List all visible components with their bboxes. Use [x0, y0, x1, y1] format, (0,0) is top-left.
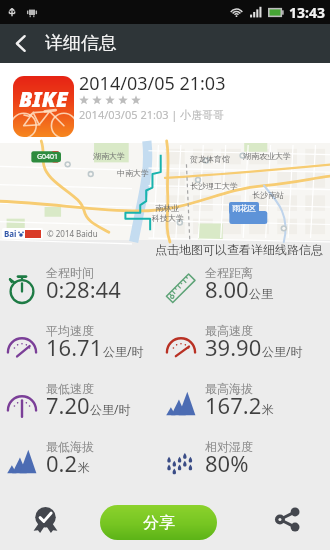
button[interactable]: 相对湿度 — [158, 432, 330, 490]
button[interactable]: Achievements — [0, 489, 91, 550]
button[interactable]: 最低海拔 — [0, 432, 158, 490]
staticText: 分享 — [143, 513, 175, 533]
staticText: 科技大学 — [152, 213, 184, 223]
staticText: 13:43 — [289, 3, 325, 22]
staticText: 米 — [78, 460, 90, 475]
staticText: 7.20 — [46, 390, 90, 420]
staticText: 8.00 — [205, 274, 249, 304]
staticText: 湖南大学 — [93, 151, 125, 161]
staticText: 最高速度 — [205, 323, 253, 338]
staticText: 贺龙体育馆 — [190, 154, 230, 164]
staticText: 全程距离 — [205, 265, 253, 280]
staticText: 全程时间 — [46, 265, 94, 280]
staticText: 平均速度 — [46, 323, 94, 338]
button[interactable]: Map, view route details — [0, 143, 330, 240]
staticText: 80% — [205, 448, 249, 478]
staticText: 公里/时 — [262, 343, 303, 359]
staticText: 39.90 — [205, 332, 262, 362]
staticText: 中南大学 — [117, 168, 149, 178]
staticText: 0:28:44 — [46, 274, 121, 304]
staticText: 最低海拔 — [46, 439, 94, 454]
button[interactable]: 最低速度 — [0, 374, 158, 432]
button[interactable]: 分享 — [100, 505, 217, 540]
button[interactable]: 最高海拔 — [158, 374, 330, 432]
staticText: 长沙南站 — [252, 190, 284, 200]
button[interactable]: 最高速度 — [158, 316, 330, 374]
staticText: © 2014 Baidu — [47, 228, 98, 239]
staticText: 2014/03/05 21:03 | 小唐哥哥 — [79, 107, 225, 122]
staticText: 16.71 — [46, 332, 103, 362]
button[interactable]: 全程距离 — [158, 258, 330, 316]
staticText: 点击地图可以查看详细线路信息 — [155, 242, 323, 257]
staticText: 2014/03/05 21:03 — [79, 71, 226, 96]
staticText: 0.2 — [46, 448, 78, 478]
staticText: 167.2 — [205, 390, 262, 420]
staticText: 湖南农业大学 — [243, 151, 291, 161]
staticText: 米 — [262, 402, 274, 417]
button[interactable]: Back — [0, 24, 41, 63]
button[interactable]: BIKE — [0, 63, 330, 143]
staticText: 最高海拔 — [205, 381, 253, 396]
staticText: Bai — [4, 228, 17, 239]
button[interactable]: 平均速度 — [0, 316, 158, 374]
button[interactable]: 全程时间 — [0, 258, 158, 316]
staticText: 公里 — [249, 286, 273, 301]
staticText: 相对湿度 — [205, 439, 253, 454]
staticText: 详细信息 — [45, 32, 117, 55]
staticText: 雨花区 — [232, 203, 256, 213]
staticText: 公里/时 — [103, 343, 144, 359]
staticText: 南林业 — [155, 203, 179, 213]
staticText: G0401 — [37, 152, 59, 162]
staticText: 长沙理工大学 — [190, 181, 238, 191]
staticText: 公里/时 — [90, 401, 131, 417]
staticText: BIKE — [19, 85, 68, 114]
staticText: 最低速度 — [46, 381, 94, 396]
button[interactable]: Share — [244, 489, 330, 550]
